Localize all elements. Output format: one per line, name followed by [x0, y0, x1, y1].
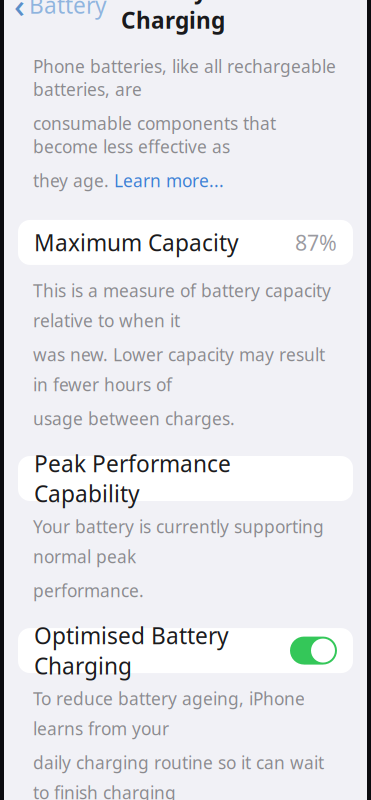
- staticText: usage between charges.: [33, 407, 235, 430]
- button[interactable]: ‹: [14, 0, 107, 31]
- staticText: was new. Lower capacity may result in fe…: [33, 343, 325, 396]
- staticText: 87%: [295, 228, 337, 257]
- staticText: Battery Health & Charging: [121, 0, 313, 35]
- staticText: Phone batteries, like all rechargeable b…: [33, 55, 336, 101]
- staticText: Optimised Battery Charging: [34, 620, 229, 681]
- staticText: ‹: [14, 0, 25, 27]
- staticText: Peak Performance Capability: [34, 448, 231, 509]
- button[interactable]: Learn more...: [114, 169, 224, 192]
- staticText: performance.: [33, 579, 144, 602]
- button[interactable]: Peak Performance Capability: [0, 456, 371, 501]
- staticText: consumable components that become less e…: [33, 112, 276, 158]
- button[interactable]: Optimised Battery Charging: [0, 628, 371, 673]
- staticText: This is a measure of battery capacity re…: [33, 279, 331, 332]
- staticText: Your battery is currently supporting nor…: [33, 515, 324, 568]
- staticText: daily charging routine so it can wait to…: [33, 751, 324, 800]
- staticText: Learn more...: [114, 169, 224, 192]
- staticText: Maximum Capacity: [34, 227, 239, 257]
- staticText: To reduce battery ageing, iPhone learns …: [33, 687, 305, 740]
- staticText: Battery: [29, 0, 107, 20]
- staticText: they age.: [33, 169, 114, 192]
